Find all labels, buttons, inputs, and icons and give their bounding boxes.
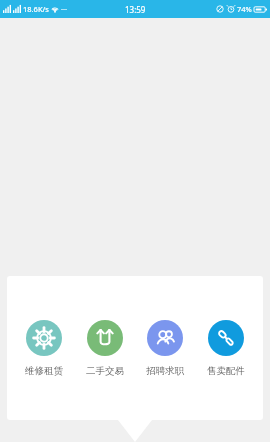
- button[interactable]: 招聘求职: [137, 318, 193, 379]
- staticText: ···: [61, 4, 68, 14]
- staticText: 售卖配件: [207, 365, 245, 377]
- button[interactable]: 维修租赁: [16, 318, 72, 379]
- staticText: 维修租赁: [25, 365, 63, 377]
- button[interactable]: 售卖配件: [198, 318, 254, 379]
- button[interactable]: 二手交易: [77, 318, 133, 379]
- staticText: 18.6K/s: [23, 4, 49, 14]
- staticText: 74%: [237, 4, 252, 14]
- staticText: 招聘求职: [146, 365, 184, 377]
- staticText: 二手交易: [86, 365, 124, 377]
- staticText: 13:59: [125, 4, 146, 15]
